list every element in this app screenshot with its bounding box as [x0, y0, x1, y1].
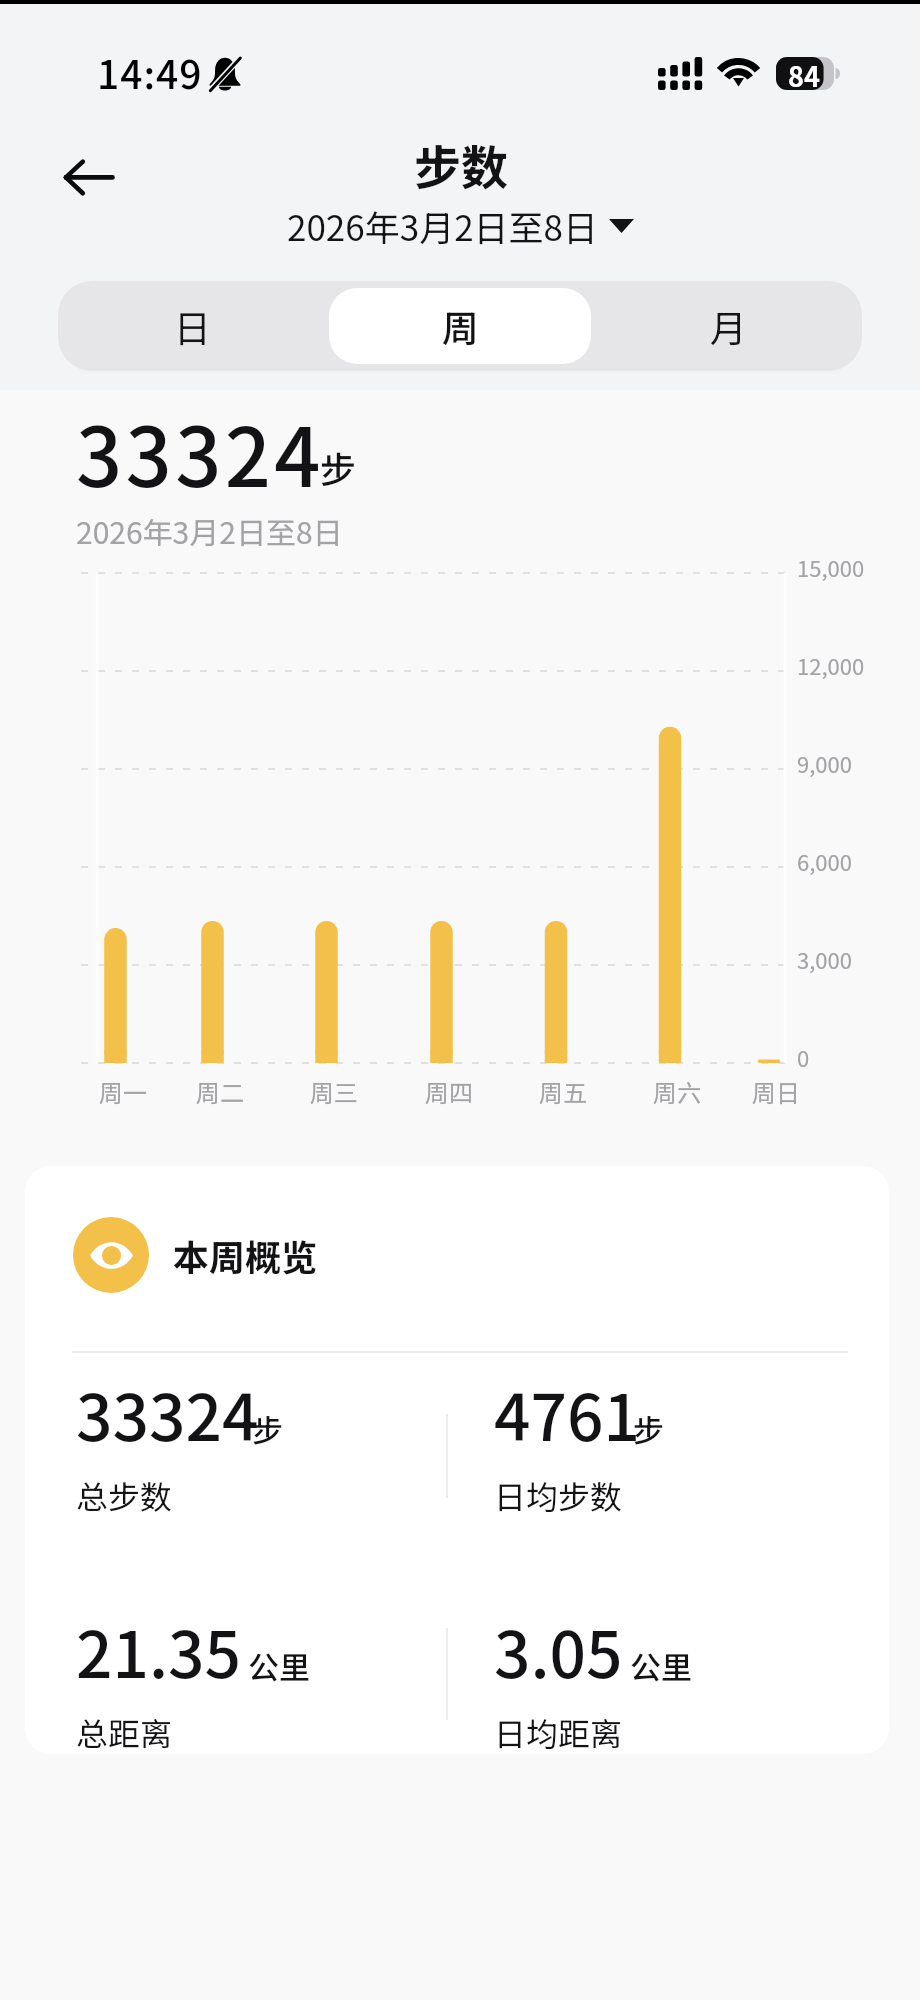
staticText: 2026年3月2日至8日	[76, 509, 343, 552]
staticText: 周六	[653, 1074, 701, 1109]
staticText: 6,000	[797, 845, 852, 877]
staticText: 周二	[196, 1074, 244, 1109]
staticText: 周五	[539, 1074, 587, 1109]
staticText: 周四	[425, 1074, 473, 1109]
staticText: 公里	[630, 1643, 692, 1688]
staticText: 12,000	[797, 649, 865, 681]
staticText: 2026年3月2日至8日	[287, 200, 598, 251]
staticText: 日	[174, 299, 211, 353]
staticText: 周三	[310, 1074, 358, 1109]
staticText: 9,000	[797, 747, 852, 779]
staticText: 周	[442, 299, 479, 353]
staticText: 月	[710, 299, 747, 353]
staticText: 总距离	[76, 1709, 173, 1754]
staticText: 3,000	[797, 943, 852, 975]
staticText: 步数	[414, 130, 508, 198]
staticText: 4761	[494, 1367, 640, 1460]
staticText: 日均距离	[494, 1709, 623, 1754]
button[interactable]: 周	[329, 288, 591, 364]
staticText: 33324	[76, 393, 324, 510]
staticText: 周日	[752, 1074, 800, 1109]
staticText: 日均步数	[494, 1472, 623, 1518]
staticText: 33324	[76, 1367, 259, 1460]
button[interactable]: 月	[597, 288, 859, 364]
staticText: 总步数	[76, 1472, 173, 1518]
staticText: 14:49	[97, 44, 203, 100]
staticText: 周一	[99, 1074, 147, 1109]
staticText: 步	[252, 1406, 283, 1451]
staticText: 本周概览	[173, 1229, 318, 1281]
staticText: 步	[633, 1406, 664, 1451]
staticText: 公里	[248, 1643, 310, 1688]
staticText: 0	[797, 1041, 810, 1073]
button[interactable]: 日	[61, 288, 323, 364]
staticText: 21.35	[76, 1604, 241, 1697]
staticText: 84	[788, 56, 820, 89]
staticText: 15,000	[797, 551, 865, 583]
staticText: 步	[320, 441, 357, 493]
button[interactable]: Back	[44, 144, 134, 212]
staticText: 3.05	[494, 1604, 623, 1697]
button[interactable]: 2026年3月2日至8日	[281, 198, 640, 253]
